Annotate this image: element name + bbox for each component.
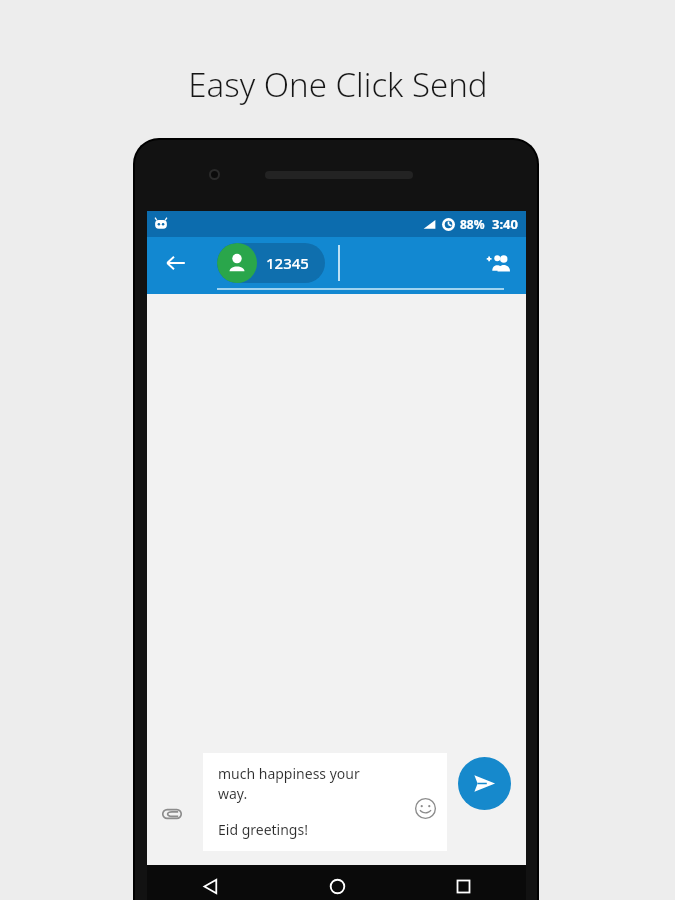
- staticText: 12345: [266, 253, 309, 273]
- button[interactable]: Add people: [478, 243, 518, 283]
- button[interactable]: Home: [274, 865, 400, 900]
- button[interactable]: Attach: [153, 795, 191, 833]
- button[interactable]: Back: [147, 865, 274, 900]
- button[interactable]: Recents: [400, 865, 526, 900]
- staticText: Eid greetings!: [218, 820, 308, 839]
- button[interactable]: Back: [157, 244, 195, 282]
- button[interactable]: Send: [458, 757, 511, 810]
- staticText: much happiness your: [218, 764, 360, 783]
- staticText: way.: [218, 784, 248, 803]
- staticText: 3:40: [492, 215, 518, 233]
- staticText: 88%: [460, 216, 485, 232]
- staticText: Easy One Click Send: [188, 62, 488, 107]
- button[interactable]: 12345: [217, 243, 325, 283]
- button[interactable]: much happiness your: [203, 753, 447, 851]
- button[interactable]: Emoji: [409, 792, 441, 824]
